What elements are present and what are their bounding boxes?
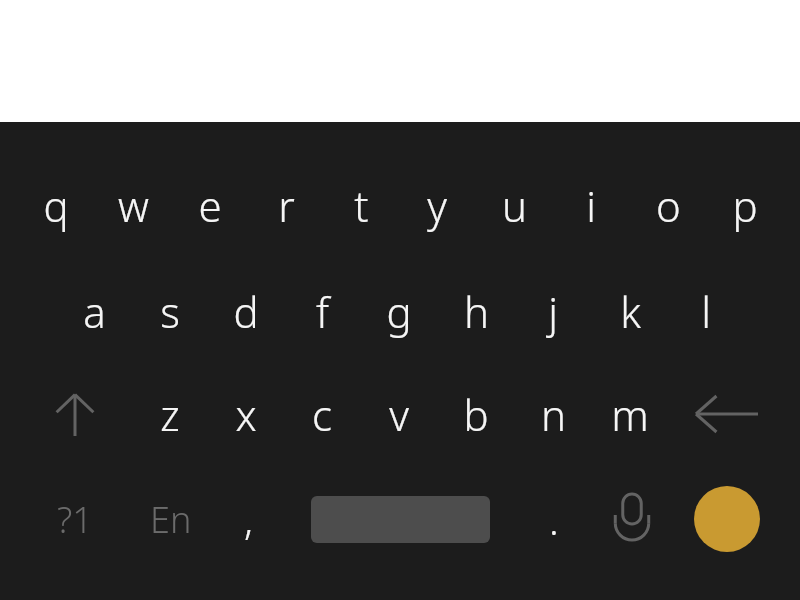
staticText: z bbox=[160, 386, 180, 443]
button[interactable]: r bbox=[248, 159, 324, 251]
staticText: o bbox=[656, 177, 681, 234]
staticText: t bbox=[354, 177, 369, 234]
staticText: u bbox=[502, 177, 527, 234]
button[interactable]: z bbox=[132, 368, 208, 460]
button[interactable]: En bbox=[125, 475, 217, 563]
button[interactable]: b bbox=[438, 368, 514, 460]
button[interactable]: f bbox=[284, 265, 360, 357]
staticText: En bbox=[150, 495, 192, 544]
staticText: i bbox=[586, 177, 596, 234]
staticText: k bbox=[620, 283, 641, 340]
staticText: v bbox=[389, 386, 409, 443]
staticText: c bbox=[312, 386, 332, 443]
button[interactable]: Shift bbox=[29, 368, 121, 460]
button[interactable]: Voice input bbox=[592, 475, 672, 563]
button[interactable]: Backspace bbox=[681, 368, 773, 460]
button[interactable]: Enter bbox=[687, 479, 767, 559]
button[interactable]: . bbox=[520, 475, 588, 563]
staticText: r bbox=[278, 177, 295, 234]
staticText: ?1 bbox=[57, 495, 93, 544]
staticText: m bbox=[611, 386, 649, 443]
staticText: n bbox=[541, 386, 566, 443]
button[interactable]: i bbox=[553, 159, 629, 251]
staticText: d bbox=[233, 283, 259, 340]
staticText: s bbox=[160, 283, 180, 340]
button[interactable]: t bbox=[323, 159, 399, 251]
button[interactable]: k bbox=[592, 265, 668, 357]
button[interactable]: o bbox=[630, 159, 706, 251]
button[interactable]: n bbox=[515, 368, 591, 460]
staticText: , bbox=[244, 492, 253, 546]
button[interactable]: p bbox=[707, 159, 783, 251]
staticText: j bbox=[548, 283, 558, 340]
button[interactable]: q bbox=[18, 159, 94, 251]
staticText: h bbox=[464, 283, 489, 340]
button[interactable]: x bbox=[208, 368, 284, 460]
button[interactable]: v bbox=[361, 368, 437, 460]
button[interactable]: l bbox=[668, 265, 744, 357]
staticText: p bbox=[732, 177, 758, 234]
staticText: x bbox=[235, 386, 257, 443]
button[interactable]: m bbox=[592, 368, 668, 460]
staticText: . bbox=[549, 492, 559, 546]
button[interactable]: u bbox=[476, 159, 552, 251]
staticText: q bbox=[43, 177, 69, 234]
button[interactable]: d bbox=[208, 265, 284, 357]
button[interactable]: e bbox=[172, 159, 248, 251]
staticText: e bbox=[198, 177, 222, 234]
button[interactable]: c bbox=[284, 368, 360, 460]
staticText: w bbox=[118, 177, 149, 234]
staticText: f bbox=[316, 283, 329, 340]
button[interactable]: , bbox=[214, 475, 282, 563]
button[interactable]: y bbox=[399, 159, 475, 251]
button[interactable]: s bbox=[132, 265, 208, 357]
button[interactable]: ?1 bbox=[29, 475, 121, 563]
staticText: a bbox=[83, 283, 106, 340]
button[interactable]: j bbox=[515, 265, 591, 357]
staticText: b bbox=[463, 386, 489, 443]
staticText: g bbox=[386, 283, 412, 340]
button[interactable]: g bbox=[361, 265, 437, 357]
staticText: l bbox=[701, 283, 711, 340]
button[interactable]: w bbox=[95, 159, 171, 251]
button[interactable]: a bbox=[56, 265, 132, 357]
button[interactable]: h bbox=[438, 265, 514, 357]
staticText: y bbox=[427, 177, 447, 234]
